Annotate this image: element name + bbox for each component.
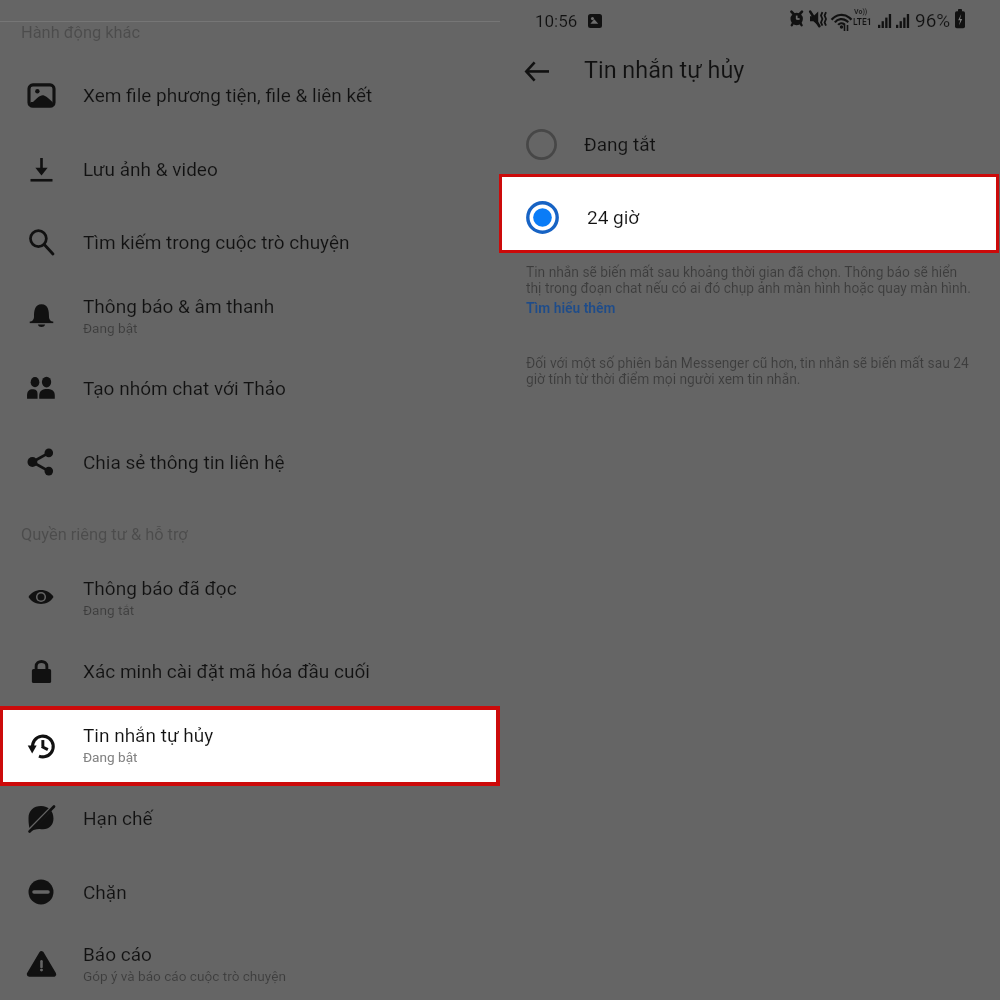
staticText: Hạn chế <box>83 807 153 829</box>
button[interactable]: Xem file phương tiện, file & liên kết <box>0 71 500 119</box>
staticText: Thông báo & âm thanh <box>83 295 275 317</box>
staticText: Quyền riêng tư & hỗ trợ <box>21 525 188 544</box>
button[interactable]: Thông báo đã đọc <box>0 568 500 626</box>
staticText: Đang bật <box>83 749 138 765</box>
button[interactable]: Chia sẻ thông tin liên hệ <box>0 438 500 486</box>
staticText: LTE1 <box>853 17 872 27</box>
staticText: Vo)) <box>854 8 868 16</box>
staticText: Đang tắt <box>584 133 656 155</box>
button[interactable]: Đang tắt <box>500 118 1000 170</box>
staticText: Lưu ảnh & video <box>83 158 218 180</box>
staticText: Hành động khác <box>21 23 141 42</box>
button[interactable]: Tin nhắn tự hủy <box>3 710 496 782</box>
button[interactable]: Lưu ảnh & video <box>0 145 500 193</box>
button[interactable]: Báo cáo <box>0 934 500 992</box>
button[interactable]: Thông báo & âm thanh <box>0 286 500 344</box>
staticText: 24 giờ <box>587 206 640 228</box>
button[interactable]: Hạn chế <box>0 794 500 842</box>
staticText: Tin nhắn tự hủy <box>584 56 745 83</box>
staticText: Góp ý và báo cáo cuộc trò chuyện <box>83 968 286 984</box>
staticText: Chia sẻ thông tin liên hệ <box>83 451 285 473</box>
staticText: 10:56 <box>535 11 578 31</box>
staticText: 96% <box>915 9 951 31</box>
button[interactable]: Xác minh cài đặt mã hóa đầu cuối <box>0 647 500 695</box>
button[interactable]: Back <box>525 61 549 85</box>
button[interactable]: Tìm kiếm trong cuộc trò chuyện <box>0 218 500 266</box>
staticText: Tạo nhóm chat với Thảo <box>83 377 286 399</box>
button[interactable]: Tìm hiểu thêm <box>526 300 616 316</box>
button[interactable]: 24 giờ <box>502 177 996 250</box>
button[interactable]: Tạo nhóm chat với Thảo <box>0 364 500 412</box>
button[interactable]: Chặn <box>0 868 500 916</box>
staticText: Chặn <box>83 881 127 903</box>
staticText: Xác minh cài đặt mã hóa đầu cuối <box>83 660 370 682</box>
staticText: Báo cáo <box>83 943 152 965</box>
staticText: Xem file phương tiện, file & liên kết <box>83 84 373 106</box>
staticText: Đang tắt <box>83 602 135 618</box>
staticText: Tin nhắn sẽ biến mất sau khoảng thời gia… <box>526 264 971 297</box>
staticText: Đối với một số phiên bản Messenger cũ hơ… <box>526 355 969 388</box>
staticText: Tin nhắn tự hủy <box>83 724 214 746</box>
staticText: Thông báo đã đọc <box>83 577 237 599</box>
staticText: Đang bật <box>83 320 138 336</box>
staticText: Tìm kiếm trong cuộc trò chuyện <box>83 231 350 253</box>
